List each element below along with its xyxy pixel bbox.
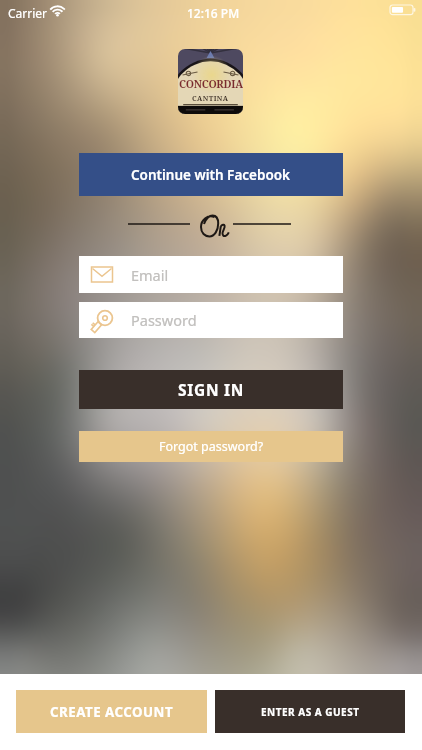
staticText: Password — [131, 310, 197, 330]
staticText: SIGN IN — [178, 379, 244, 400]
staticText: CANTINA — [192, 94, 229, 104]
button[interactable]: Forgot password? — [79, 431, 343, 462]
button[interactable]: ENTER AS A GUEST — [215, 690, 405, 733]
button[interactable]: CREATE ACCOUNT — [16, 690, 207, 733]
button[interactable]: Email — [79, 256, 343, 293]
staticText: 12:16 PM — [187, 5, 240, 21]
staticText: Carrier — [8, 5, 48, 21]
staticText: Continue with Facebook — [131, 166, 291, 184]
button[interactable]: Continue with Facebook — [79, 153, 343, 196]
button[interactable]: Password — [79, 302, 343, 338]
button[interactable]: SIGN IN — [79, 370, 343, 409]
staticText: Email — [131, 265, 169, 285]
staticText: Forgot password? — [159, 438, 264, 455]
staticText: CREATE ACCOUNT — [50, 703, 174, 721]
staticText: CONCORDIA — [179, 77, 243, 91]
staticText: ENTER AS A GUEST — [261, 705, 360, 719]
